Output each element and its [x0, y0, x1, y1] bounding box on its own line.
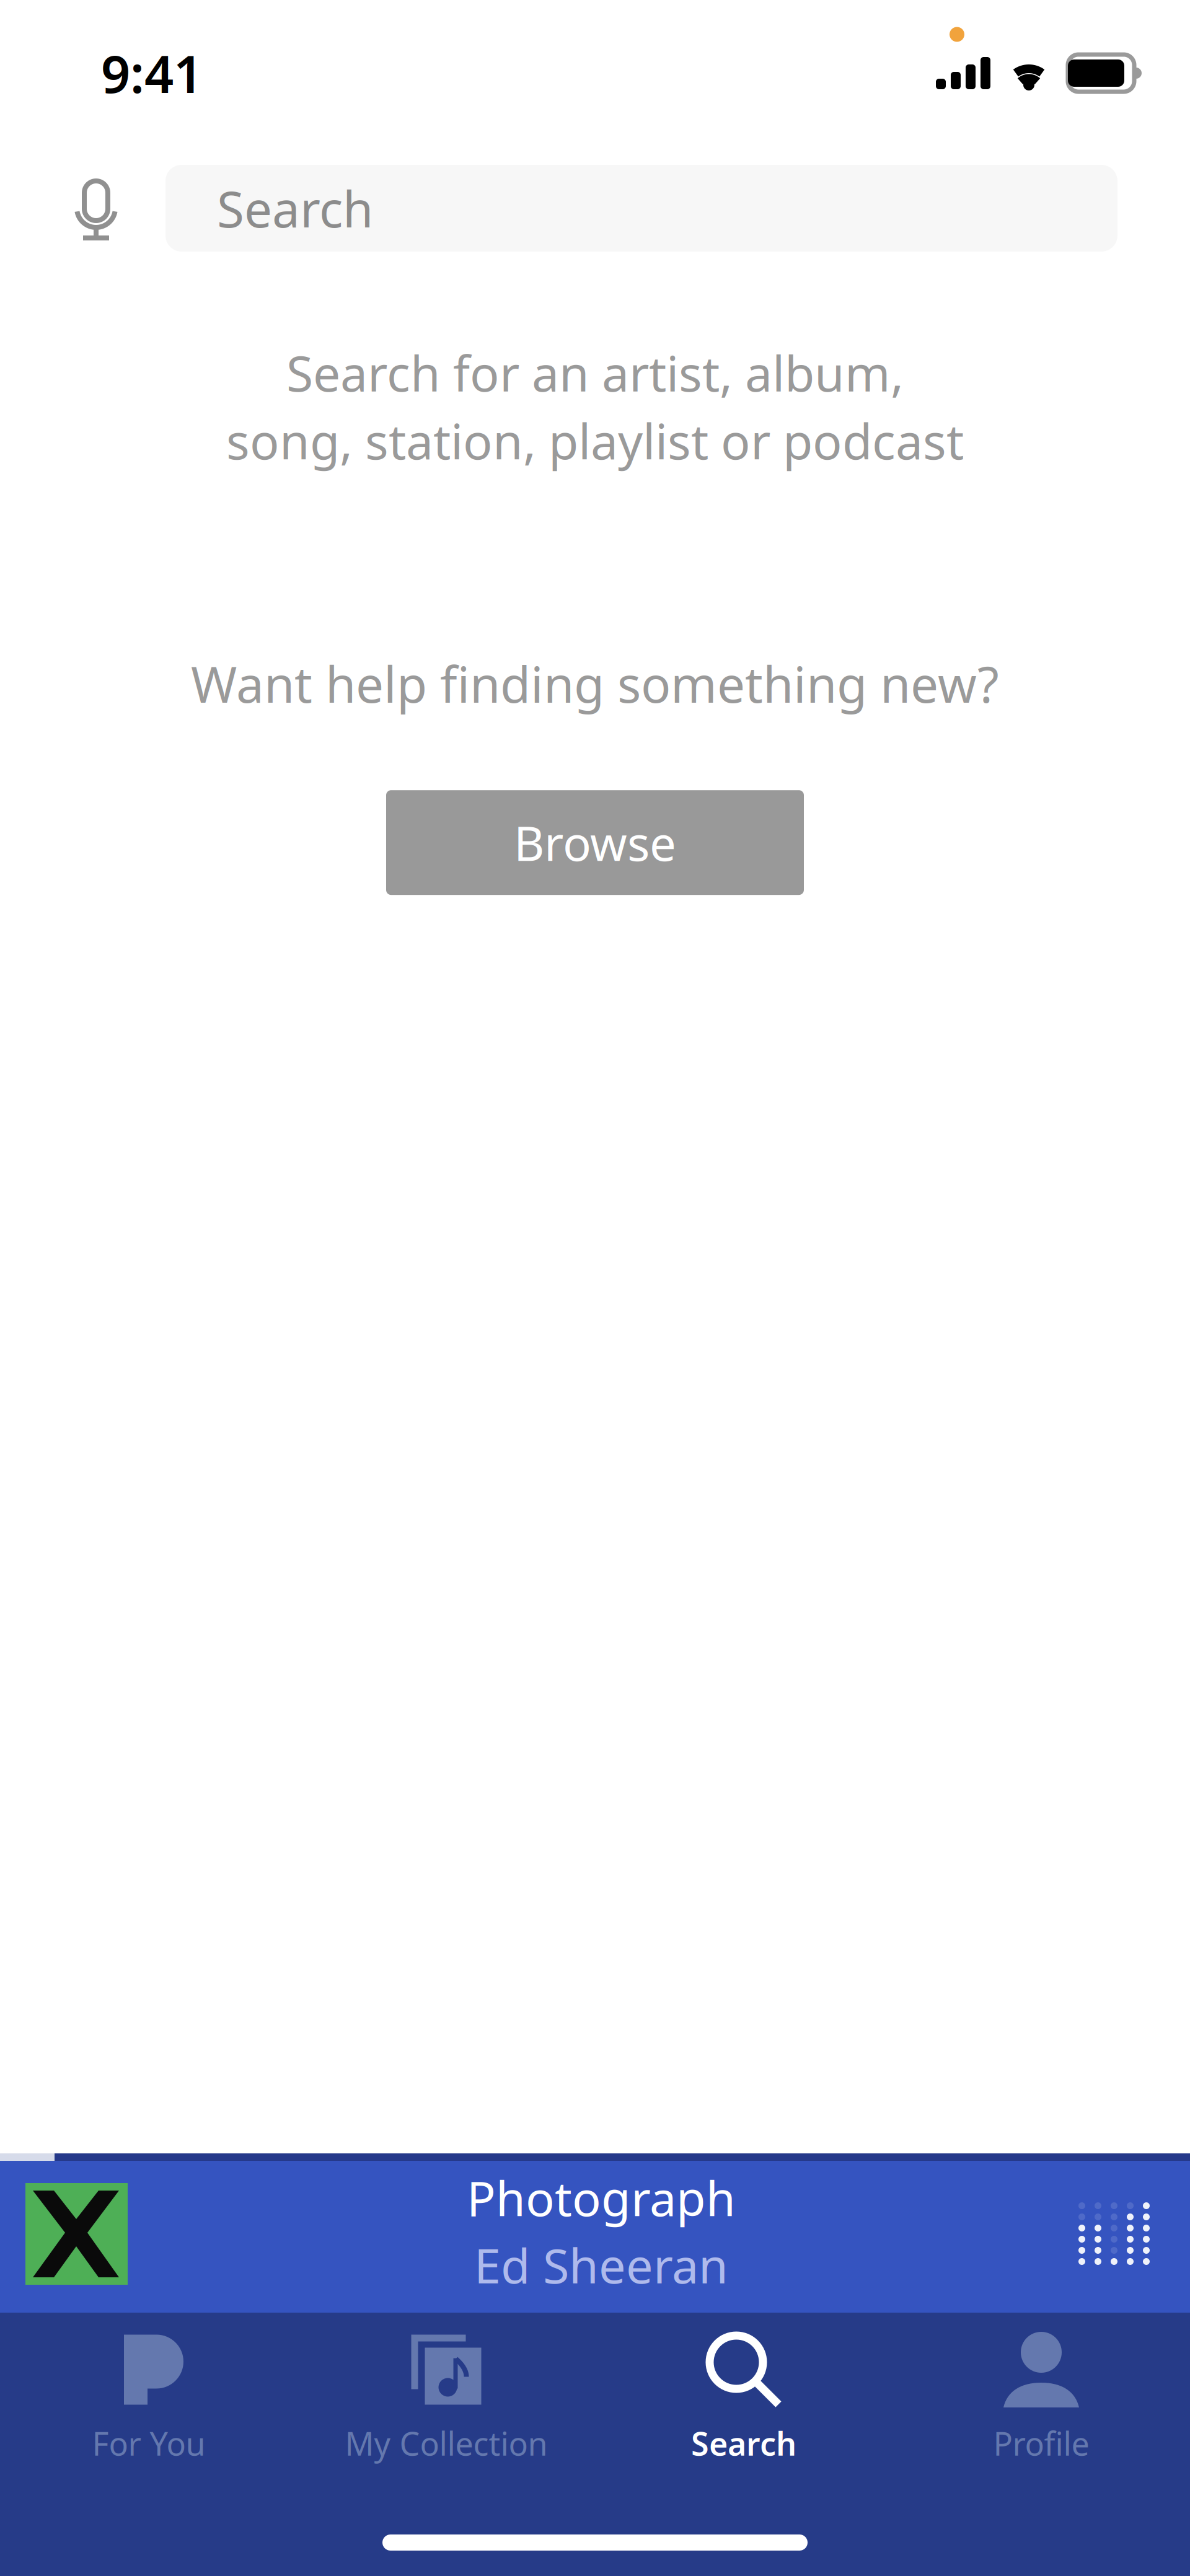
button[interactable]: For You: [0, 2313, 297, 2492]
staticText: Profile: [993, 2422, 1089, 2465]
staticText: My Collection: [345, 2422, 548, 2465]
button[interactable]: Home indicator: [382, 2534, 808, 2551]
staticText: Search for an artist, album,: [286, 340, 904, 405]
button[interactable]: Voice search: [0, 175, 165, 242]
button[interactable]: Search: [595, 2313, 892, 2492]
staticText: For You: [92, 2422, 205, 2465]
button[interactable]: Browse: [386, 790, 804, 895]
staticText: 9:41: [101, 39, 203, 107]
button[interactable]: Profile: [892, 2313, 1190, 2492]
staticText: song, station, playlist or podcast: [226, 408, 964, 473]
staticText: Browse: [514, 811, 676, 874]
button[interactable]: My Collection: [297, 2313, 595, 2492]
staticText: Ed Sheeran: [474, 2233, 728, 2297]
staticText: Photograph: [467, 2166, 736, 2229]
staticText: Search: [691, 2422, 796, 2465]
button[interactable]: Photograph: [0, 2153, 1190, 2313]
staticText: Want help finding something new?: [191, 651, 999, 716]
staticText: Search: [217, 175, 373, 241]
button[interactable]: Search: [165, 165, 1117, 252]
